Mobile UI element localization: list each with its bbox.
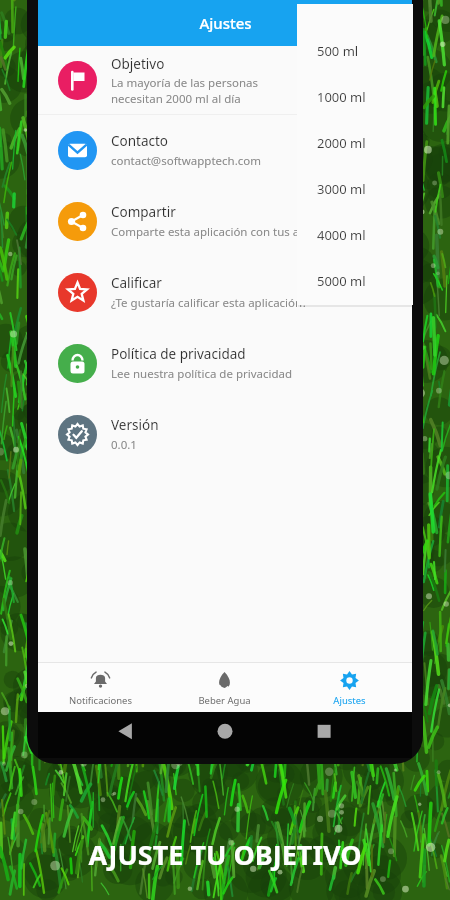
button[interactable]: Beber Agua [162,663,287,712]
staticText: Política de privacidad [111,345,246,363]
button[interactable]: 3000 ml [297,166,413,212]
staticText: Lee nuestra política de privacidad [111,366,293,382]
other: System navigation [38,712,412,758]
staticText: 2000 ml [317,134,366,152]
button[interactable]: Ajustes [38,0,412,46]
staticText: Beber Agua [198,694,251,707]
button[interactable]: 1000 ml [297,74,413,120]
staticText: contact@softwapptech.com [111,153,261,169]
button[interactable]: 4000 ml [297,212,413,258]
staticText: 500 ml [317,42,359,60]
staticText: 0.0.1 [111,437,137,453]
button[interactable]: Contacto [38,115,412,186]
staticText: Calificar [111,274,162,292]
button[interactable]: 5000 ml [297,258,413,304]
staticText: Contacto [111,132,169,150]
staticText: Ajustes [199,13,252,33]
staticText: Objetivo [111,55,165,73]
button[interactable]: 2000 ml [297,120,413,166]
staticText: Notificaciones [69,694,132,707]
staticText: Compartir [111,203,176,221]
staticText: 1000 ml [317,88,366,106]
button[interactable]: Calificar [38,257,412,328]
staticText: 3000 ml [317,180,366,198]
button[interactable]: Objetivo [38,46,412,114]
button[interactable]: Compartir [38,186,412,257]
staticText: 5000 ml [317,272,366,290]
staticText: 4000 ml [317,226,366,244]
staticText: La mayoría de las personas necesitan 200… [111,75,258,106]
button[interactable]: Ajustes [287,663,412,712]
staticText: Ajustes [333,694,366,707]
staticText: AJUSTE TU OBJETIVO [0,836,450,873]
staticText: ¿Te gustaría calificar esta aplicación? [111,295,308,311]
button[interactable]: Versión [38,399,412,470]
staticText: Comparte esta aplicación con tus amigos [111,224,333,240]
button[interactable]: Notificaciones [38,663,162,712]
button[interactable]: 500 ml [297,28,413,74]
staticText: Versión [111,416,159,434]
button[interactable]: Política de privacidad [38,328,412,399]
